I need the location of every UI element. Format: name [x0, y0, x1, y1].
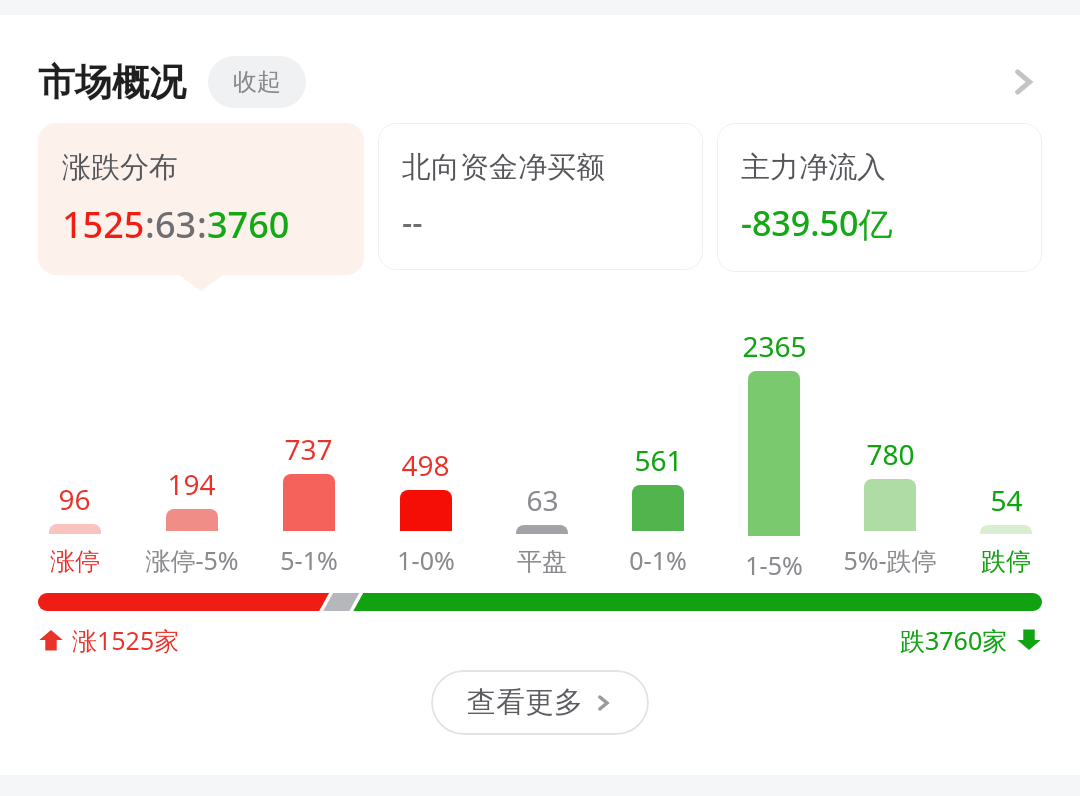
button[interactable]: 63: [484, 481, 600, 577]
staticText: 194: [167, 465, 216, 503]
staticText: 1-5%: [745, 548, 803, 577]
button[interactable]: 780: [832, 435, 948, 577]
staticText: 3760: [207, 200, 290, 249]
staticText: 737: [284, 430, 333, 468]
button[interactable]: 北向资金净买额: [378, 123, 703, 270]
staticText: 北向资金净买额: [402, 149, 605, 186]
button[interactable]: 收起: [208, 56, 306, 108]
button[interactable]: 主力净流入: [717, 123, 1042, 272]
staticText: 561: [634, 441, 683, 479]
staticText: :: [145, 200, 155, 249]
button[interactable]: 查看更多: [431, 670, 649, 735]
staticText: 涨跌分布: [62, 149, 178, 186]
staticText: 涨停-5%: [145, 543, 239, 577]
button[interactable]: 54: [948, 481, 1064, 577]
staticText: 5-1%: [280, 543, 338, 577]
button[interactable]: 96: [16, 480, 133, 577]
staticText: 96: [58, 480, 91, 518]
staticText: 498: [401, 446, 450, 484]
staticText: 跌3760家: [900, 623, 1008, 657]
staticText: --: [402, 200, 423, 244]
staticText: 主力净流入: [741, 149, 886, 186]
staticText: 63: [155, 200, 197, 249]
staticText: 跌停: [981, 546, 1031, 577]
staticText: 0-1%: [629, 543, 687, 577]
staticText: 5%-跌停: [843, 543, 937, 577]
staticText: 1525: [62, 200, 145, 249]
staticText: 市场概况: [38, 59, 186, 106]
staticText: :: [197, 200, 207, 249]
staticText: 平盘: [517, 546, 567, 577]
button[interactable]: 涨跌分布: [38, 123, 364, 275]
staticText: 涨停: [50, 546, 100, 577]
staticText: 查看更多: [467, 684, 583, 721]
button[interactable]: More: [996, 55, 1050, 109]
staticText: 780: [866, 435, 915, 473]
staticText: 收起: [233, 67, 281, 97]
staticText: 2365: [742, 327, 807, 365]
button[interactable]: 561: [600, 441, 716, 577]
button[interactable]: 498: [367, 446, 484, 577]
staticText: 63: [526, 481, 559, 519]
button[interactable]: 737: [250, 430, 367, 577]
staticText: 1-0%: [397, 543, 455, 577]
button[interactable]: 2365: [716, 327, 832, 577]
staticText: -839.50亿: [741, 200, 893, 246]
staticText: 54: [990, 481, 1023, 519]
staticText: 涨1525家: [72, 623, 180, 657]
button[interactable]: 194: [133, 465, 250, 577]
